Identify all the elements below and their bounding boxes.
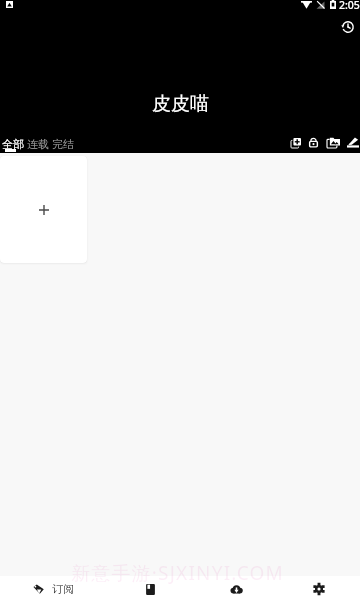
staticText: 全部 bbox=[2, 137, 24, 151]
button[interactable]: Subscriptions bbox=[0, 577, 106, 600]
button[interactable]: Lock bbox=[305, 137, 324, 148]
button[interactable]: Settings bbox=[278, 577, 360, 600]
staticText: 订阅 bbox=[52, 582, 74, 596]
staticText: 2:05 bbox=[339, 0, 360, 11]
staticText: 完结 bbox=[52, 137, 74, 151]
button[interactable]: History bbox=[334, 13, 360, 40]
staticText: 连载 bbox=[27, 137, 49, 151]
button[interactable]: 连载 bbox=[25, 121, 50, 153]
button[interactable]: 完结 bbox=[50, 121, 75, 153]
button[interactable]: Downloads bbox=[194, 577, 278, 600]
staticText: 新意手游·SJXINYI.COM bbox=[71, 560, 284, 586]
button[interactable]: 全部 bbox=[0, 121, 25, 153]
button[interactable]: Add to library bbox=[286, 137, 305, 148]
staticText: 皮皮喵 bbox=[152, 92, 209, 116]
button[interactable]: Collections bbox=[324, 137, 343, 148]
button[interactable]: Edit bbox=[343, 137, 360, 148]
button[interactable]: Add comic bbox=[0, 156, 87, 263]
button[interactable]: Bookshelf bbox=[106, 577, 194, 600]
